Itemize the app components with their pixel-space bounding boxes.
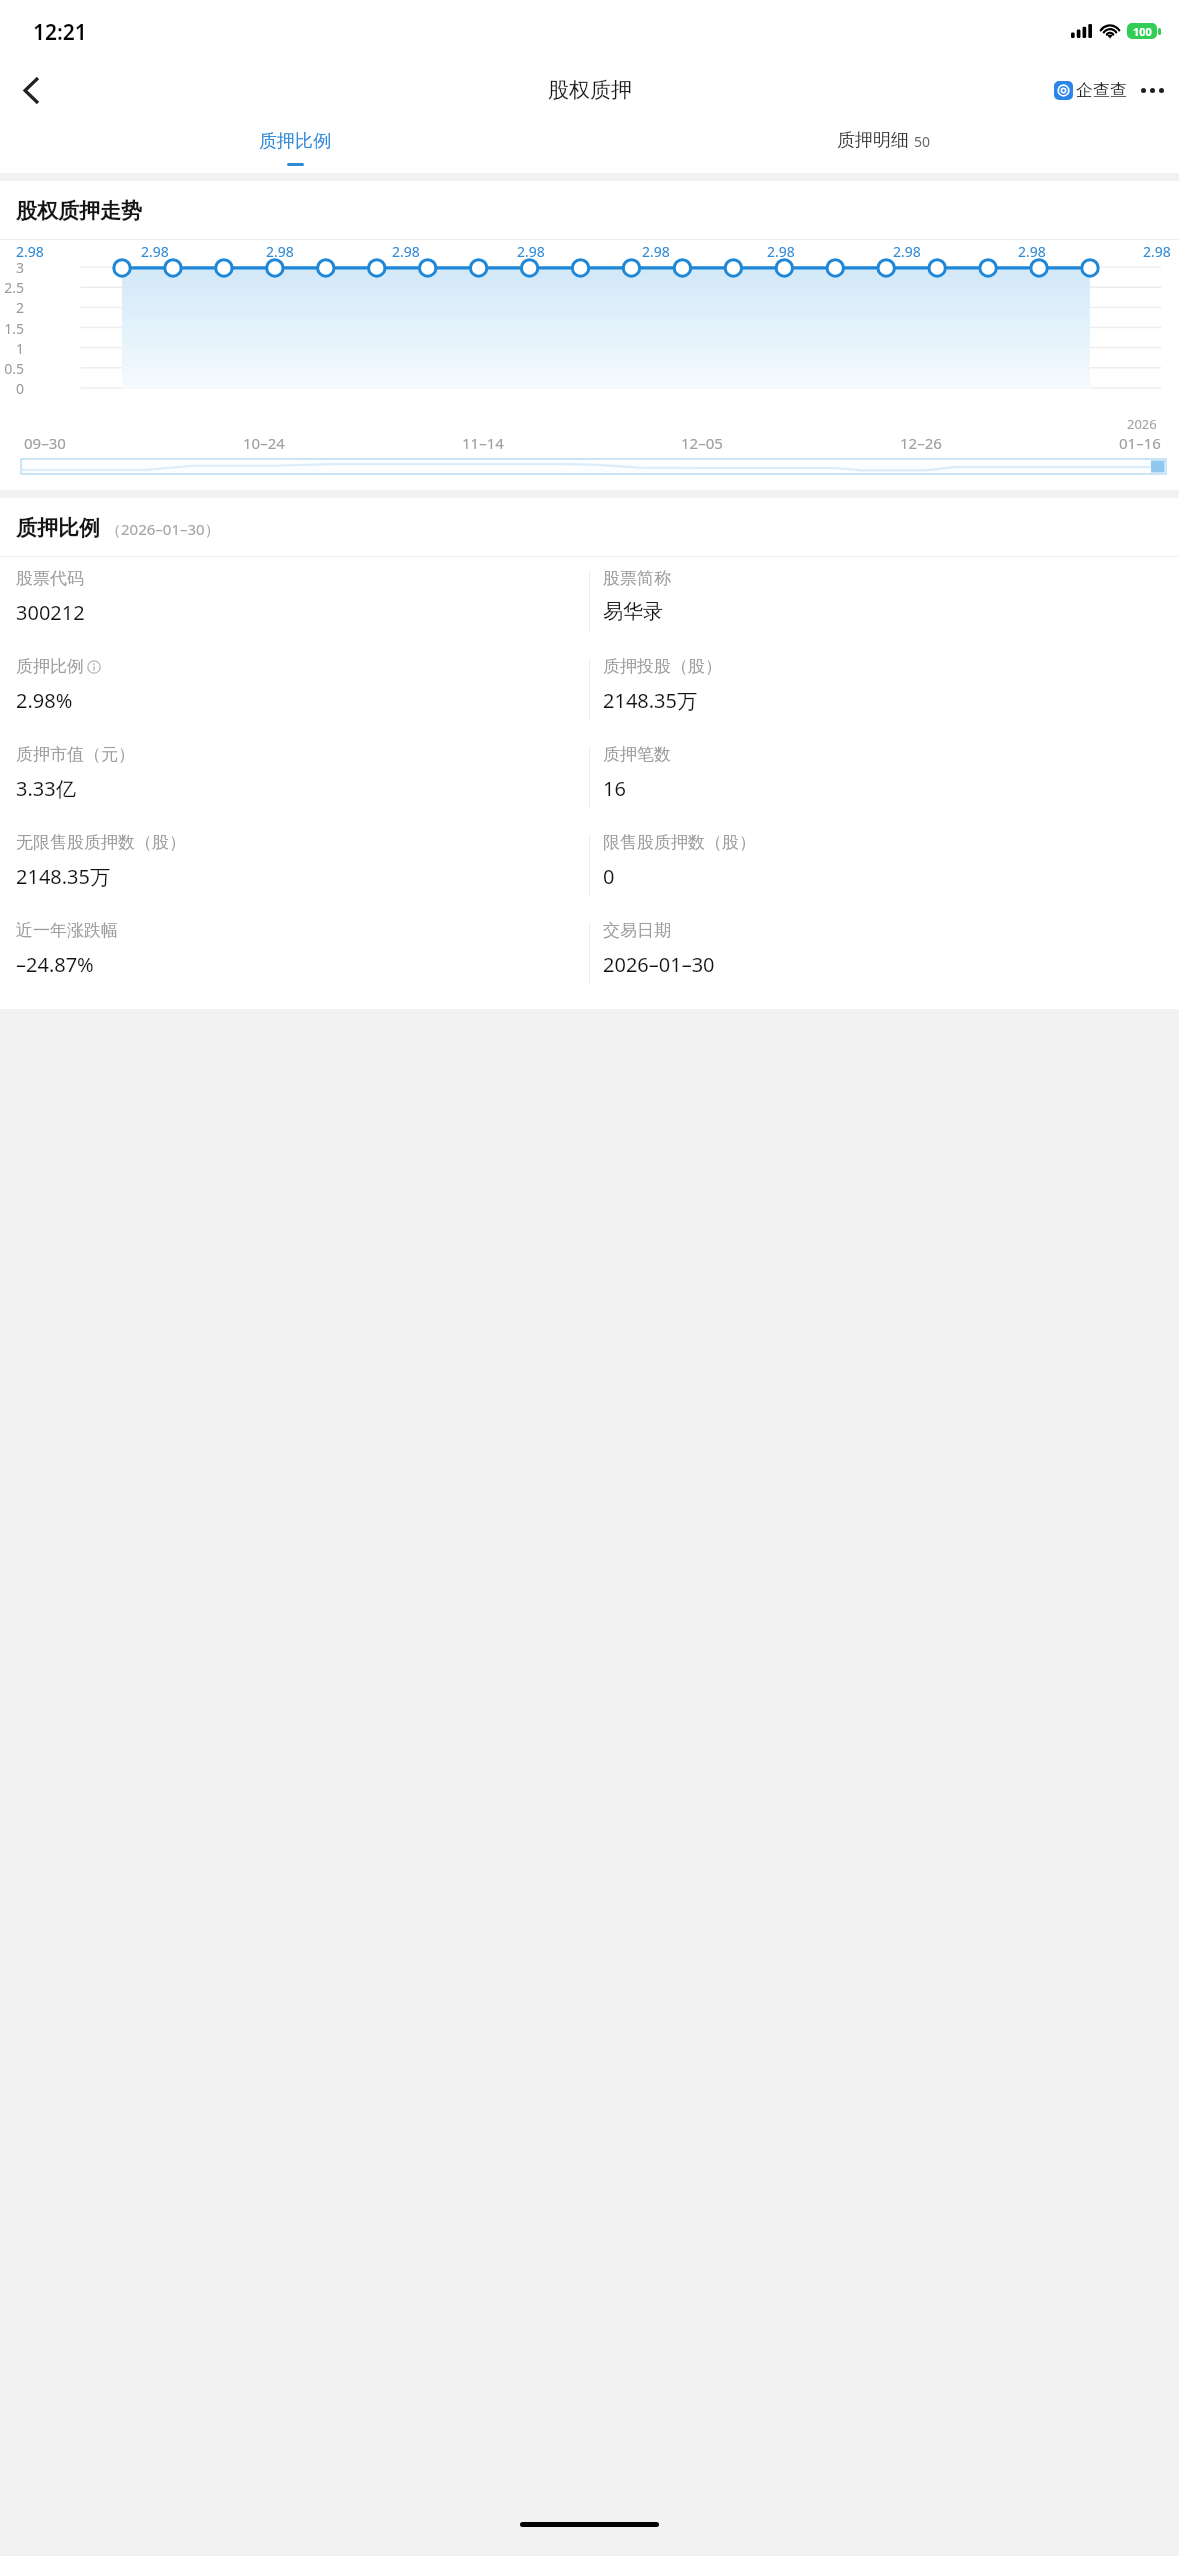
button[interactable]: 交易日期 — [589, 909, 1179, 997]
staticText: 2026 — [1127, 415, 1157, 433]
staticText: 质押投股（股） — [603, 656, 722, 677]
staticText: 2.98 — [1143, 242, 1171, 261]
staticText: 3 — [2, 258, 24, 277]
staticText: 11–14 — [462, 433, 504, 453]
staticText: 股权质押 — [548, 77, 632, 103]
staticText: 50 — [914, 132, 931, 151]
staticText: 10–24 — [243, 433, 285, 453]
staticText: 12–26 — [900, 433, 942, 453]
staticText: 股票简称 — [603, 568, 671, 589]
staticText: 质押比例 — [259, 130, 331, 153]
staticText: 2.98 — [517, 242, 545, 261]
staticText: 2.98 — [893, 242, 921, 261]
staticText: 股权质押走势 — [16, 198, 142, 224]
button[interactable]: Chart range slider — [21, 459, 1166, 474]
button[interactable]: 质押市值（元） — [0, 733, 589, 821]
staticText: 企查查 — [1076, 80, 1127, 101]
staticText: 1.5 — [2, 319, 24, 338]
staticText: 2 — [2, 298, 24, 317]
staticText: 2.98 — [266, 242, 294, 261]
staticText: 2148.35万 — [16, 863, 110, 890]
button[interactable]: 无限售股质押数（股） — [0, 821, 589, 909]
staticText: 2.98 — [392, 242, 420, 261]
button[interactable]: 质押投股（股） — [589, 645, 1179, 733]
staticText: –24.87% — [16, 951, 94, 978]
staticText: 限售股质押数（股） — [603, 832, 756, 853]
staticText: 2.98 — [141, 242, 169, 261]
button[interactable]: Back — [0, 62, 62, 118]
staticText: 质押比例 — [16, 656, 84, 677]
button[interactable]: 质押比例 — [0, 118, 589, 173]
staticText: 100 — [1133, 24, 1152, 39]
staticText: 2.98% — [16, 687, 73, 714]
staticText: 3.33亿 — [16, 775, 76, 802]
staticText: 1 — [2, 339, 24, 358]
staticText: 2.5 — [2, 278, 24, 297]
staticText: 交易日期 — [603, 920, 671, 941]
staticText: 300212 — [16, 599, 85, 626]
button[interactable]: 质押笔数 — [589, 733, 1179, 821]
staticText: 16 — [603, 775, 626, 802]
staticText: 质押笔数 — [603, 744, 671, 765]
staticText: 易华录 — [603, 599, 663, 624]
staticText: 09–30 — [24, 433, 66, 453]
button[interactable]: 质押明细 — [589, 118, 1179, 173]
button[interactable]: 限售股质押数（股） — [589, 821, 1179, 909]
staticText: 12:21 — [33, 18, 87, 47]
staticText: 2148.35万 — [603, 687, 697, 714]
button[interactable]: 股票代码 — [0, 557, 589, 645]
staticText: 质押市值（元） — [16, 744, 135, 765]
button[interactable]: More options — [1135, 70, 1169, 110]
button[interactable]: 质押比例 — [0, 645, 589, 733]
staticText: 12–05 — [681, 433, 723, 453]
button[interactable]: 股票简称 — [589, 557, 1179, 645]
staticText: 2026–01–30 — [603, 951, 715, 978]
button[interactable]: 企查查 — [1052, 72, 1129, 109]
staticText: 0 — [2, 379, 24, 398]
staticText: 股票代码 — [16, 568, 84, 589]
staticText: 0 — [603, 863, 615, 890]
staticText: 2.98 — [16, 242, 44, 261]
staticText: 0.5 — [2, 359, 24, 378]
staticText: 2.98 — [1018, 242, 1046, 261]
staticText: （2026–01–30） — [106, 519, 220, 539]
staticText: 无限售股质押数（股） — [16, 832, 186, 853]
staticText: 质押比例 — [16, 515, 100, 541]
staticText: 01–16 — [1119, 433, 1161, 453]
staticText: 2.98 — [767, 242, 795, 261]
staticText: 近一年涨跌幅 — [16, 920, 118, 941]
button[interactable]: 近一年涨跌幅 — [0, 909, 589, 997]
staticText: 2.98 — [642, 242, 670, 261]
staticText: 质押明细 — [837, 129, 909, 152]
